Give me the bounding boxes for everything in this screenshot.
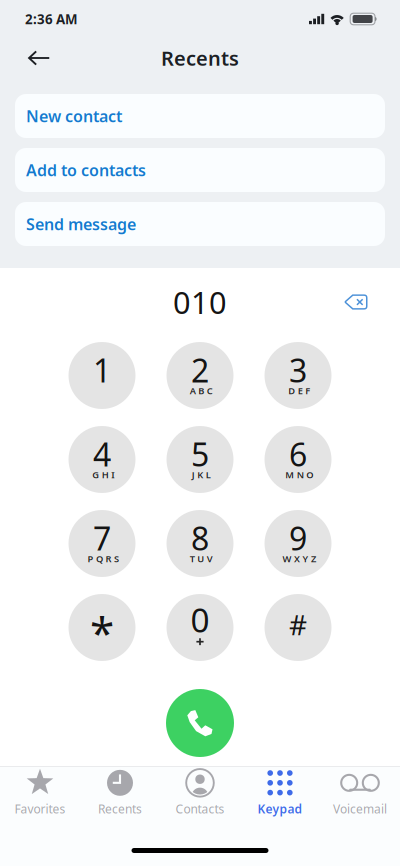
staticText: 0 xyxy=(190,597,209,642)
button[interactable]: Delete xyxy=(334,283,378,321)
staticText: 9 xyxy=(289,517,307,559)
button[interactable]: Keypad xyxy=(240,770,320,816)
button[interactable]: Send message xyxy=(15,202,385,246)
button[interactable]: Back xyxy=(15,41,63,75)
staticText: TUV xyxy=(190,552,213,565)
staticText: DEF xyxy=(288,384,310,397)
staticText: MNO xyxy=(285,468,313,481)
staticText: JKL xyxy=(192,468,211,481)
staticText: GHI xyxy=(92,468,114,481)
staticText: Recents xyxy=(98,801,142,817)
button[interactable]: Favorites xyxy=(0,770,80,816)
button[interactable]: # xyxy=(264,594,331,661)
staticText: * xyxy=(90,603,114,661)
staticText: Add to contacts xyxy=(26,159,146,181)
button[interactable]: Add to contacts xyxy=(15,148,385,192)
button[interactable]: 2 xyxy=(166,342,233,409)
button[interactable]: Voicemail xyxy=(320,770,400,816)
button[interactable]: 7 xyxy=(68,510,135,577)
staticText: 2 xyxy=(191,349,209,391)
button[interactable]: New contact xyxy=(15,94,385,138)
button[interactable]: Call xyxy=(166,689,234,757)
staticText: Voicemail xyxy=(333,801,387,817)
staticText: ABC xyxy=(190,384,213,397)
button[interactable]: 4 xyxy=(68,426,135,493)
staticText: Favorites xyxy=(14,801,65,817)
staticText: New contact xyxy=(26,105,122,127)
staticText: WXYZ xyxy=(282,552,316,565)
staticText: 7 xyxy=(93,517,111,559)
button[interactable]: 0 xyxy=(166,594,233,661)
button[interactable]: 3 xyxy=(264,342,331,409)
button[interactable]: 8 xyxy=(166,510,233,577)
staticText: # xyxy=(289,606,307,643)
button[interactable]: 9 xyxy=(264,510,331,577)
staticText: Send message xyxy=(26,213,136,235)
staticText: PQRS xyxy=(87,552,119,565)
staticText: 8 xyxy=(191,517,209,559)
staticText: 010 xyxy=(173,282,227,322)
button[interactable]: 6 xyxy=(264,426,331,493)
staticText: 6 xyxy=(289,433,307,475)
staticText: 2:36 AM xyxy=(25,10,78,28)
staticText: 4 xyxy=(93,433,111,475)
staticText: Recents xyxy=(161,45,239,71)
staticText: 1 xyxy=(93,349,111,391)
button[interactable]: 5 xyxy=(166,426,233,493)
staticText: 5 xyxy=(191,433,209,475)
button[interactable]: Recents xyxy=(80,770,160,816)
staticText: Contacts xyxy=(175,801,224,817)
button[interactable]: * xyxy=(68,594,135,661)
button[interactable]: Contacts xyxy=(160,770,240,816)
button[interactable]: 1 xyxy=(68,342,135,409)
staticText: Keypad xyxy=(257,801,302,817)
staticText: 3 xyxy=(289,349,307,391)
